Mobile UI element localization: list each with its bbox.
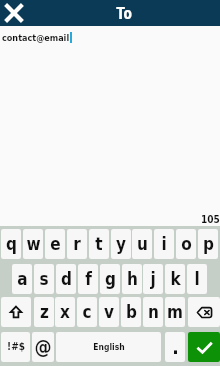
button[interactable]: v xyxy=(99,297,119,327)
staticText: c xyxy=(82,302,92,322)
button[interactable]: a xyxy=(12,264,32,294)
button[interactable]: n xyxy=(143,297,163,327)
button[interactable]: Shift xyxy=(1,297,31,327)
staticText: b xyxy=(126,302,137,322)
button[interactable]: h xyxy=(122,264,142,294)
button[interactable]: f xyxy=(78,264,98,294)
button[interactable]: . xyxy=(165,332,185,362)
staticText: n xyxy=(148,302,159,322)
staticText: i xyxy=(161,234,167,254)
staticText: j xyxy=(150,269,156,289)
button[interactable]: z xyxy=(34,297,54,327)
staticText: d xyxy=(61,269,72,289)
button[interactable]: u xyxy=(132,229,152,259)
staticText: z xyxy=(40,302,49,322)
staticText: x xyxy=(60,302,70,322)
staticText: v xyxy=(104,302,114,322)
button[interactable]: i xyxy=(154,229,174,259)
button[interactable]: Backspace xyxy=(188,297,220,327)
staticText: . xyxy=(172,336,179,358)
staticText: l xyxy=(194,269,200,289)
button[interactable]: !#$ xyxy=(1,332,30,362)
button[interactable]: Done xyxy=(188,332,220,362)
button[interactable]: e xyxy=(45,229,65,259)
staticText: u xyxy=(137,234,148,254)
staticText: @ xyxy=(34,336,52,358)
button[interactable]: English xyxy=(56,332,161,362)
button[interactable]: Close xyxy=(0,0,28,26)
button[interactable]: x xyxy=(55,297,75,327)
staticText: contact@email xyxy=(2,33,70,43)
staticText: h xyxy=(127,269,138,289)
staticText: 105 xyxy=(201,214,220,226)
staticText: w xyxy=(26,234,41,254)
button[interactable]: t xyxy=(89,229,109,259)
button[interactable]: contact@email xyxy=(2,32,72,43)
staticText: p xyxy=(203,234,214,254)
staticText: q xyxy=(6,234,17,254)
staticText: r xyxy=(73,234,81,254)
staticText: To xyxy=(116,3,132,23)
staticText: t xyxy=(95,234,103,254)
staticText: English xyxy=(93,342,125,352)
staticText: s xyxy=(39,269,49,289)
staticText: a xyxy=(17,269,28,289)
staticText: e xyxy=(50,234,61,254)
staticText: o xyxy=(181,234,192,254)
staticText: k xyxy=(170,269,181,289)
staticText: !#$ xyxy=(7,341,25,353)
staticText: f xyxy=(85,269,92,289)
staticText: m xyxy=(167,302,183,322)
button[interactable]: s xyxy=(34,264,54,294)
button[interactable]: @ xyxy=(32,332,54,362)
button[interactable]: p xyxy=(198,229,218,259)
button[interactable]: w xyxy=(23,229,43,259)
button[interactable]: c xyxy=(77,297,97,327)
button[interactable]: k xyxy=(165,264,185,294)
button[interactable]: d xyxy=(56,264,76,294)
button[interactable]: q xyxy=(1,229,21,259)
button[interactable]: y xyxy=(111,229,131,259)
button[interactable]: m xyxy=(165,297,185,327)
button[interactable]: o xyxy=(176,229,196,259)
button[interactable]: b xyxy=(121,297,141,327)
button[interactable]: l xyxy=(187,264,207,294)
button[interactable]: g xyxy=(100,264,120,294)
staticText: g xyxy=(105,269,116,289)
staticText: y xyxy=(116,234,126,254)
button[interactable]: j xyxy=(143,264,163,294)
button[interactable]: r xyxy=(67,229,87,259)
